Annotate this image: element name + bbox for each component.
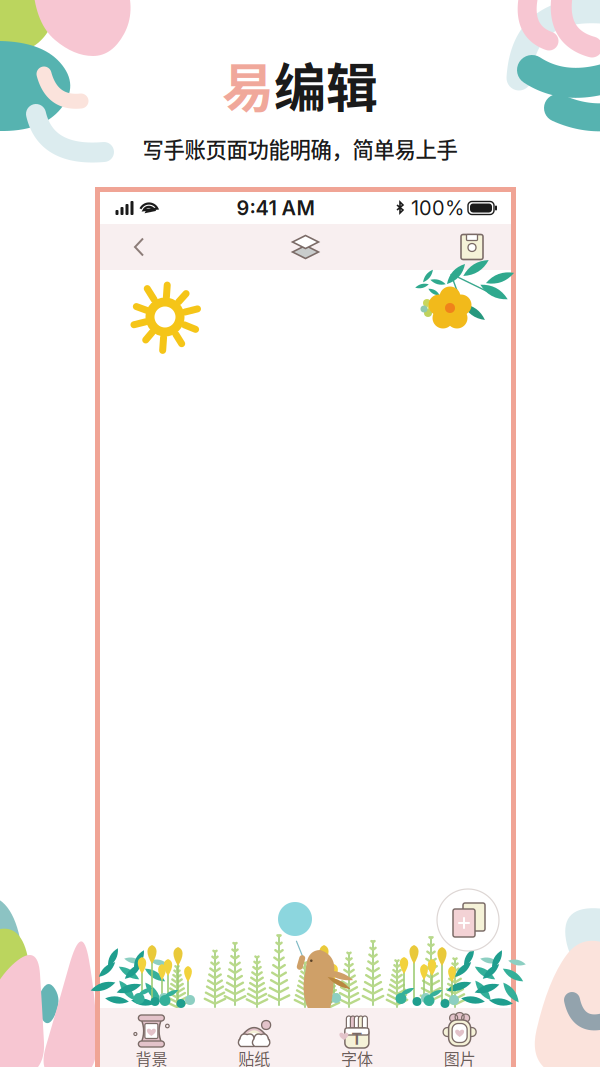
button[interactable]: T — [305, 1008, 408, 1067]
button[interactable]: 贴纸 — [203, 1008, 306, 1067]
staticText: 100% — [411, 196, 464, 220]
staticText: 易 — [222, 47, 274, 122]
staticText: 写手账页面功能明确，简单易上手 — [142, 133, 457, 164]
staticText: 9:41 AM — [236, 196, 314, 220]
staticText: 图片 — [444, 1046, 476, 1067]
button[interactable]: Back — [112, 224, 166, 270]
button[interactable]: Add page — [437, 889, 499, 951]
button[interactable]: Save — [445, 224, 499, 270]
staticText: T — [351, 1029, 362, 1049]
staticText: 字体 — [341, 1046, 373, 1067]
button[interactable]: 图片 — [408, 1008, 511, 1067]
button[interactable]: 背景 — [100, 1008, 203, 1067]
staticText: 贴纸 — [238, 1046, 270, 1067]
staticText: 背景 — [135, 1046, 167, 1067]
button[interactable]: Layers — [278, 224, 332, 270]
staticText: 编辑 — [274, 47, 378, 122]
